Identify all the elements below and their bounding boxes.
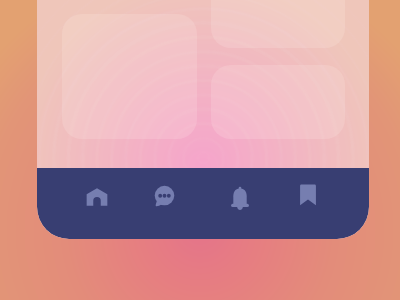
button[interactable]: Bookmarks xyxy=(273,184,344,209)
button[interactable]: Home xyxy=(62,186,132,208)
button[interactable] xyxy=(211,0,345,48)
button[interactable]: Messages xyxy=(132,186,202,207)
button[interactable] xyxy=(211,65,345,139)
button[interactable]: Notifications xyxy=(202,184,273,210)
button[interactable] xyxy=(62,14,197,139)
